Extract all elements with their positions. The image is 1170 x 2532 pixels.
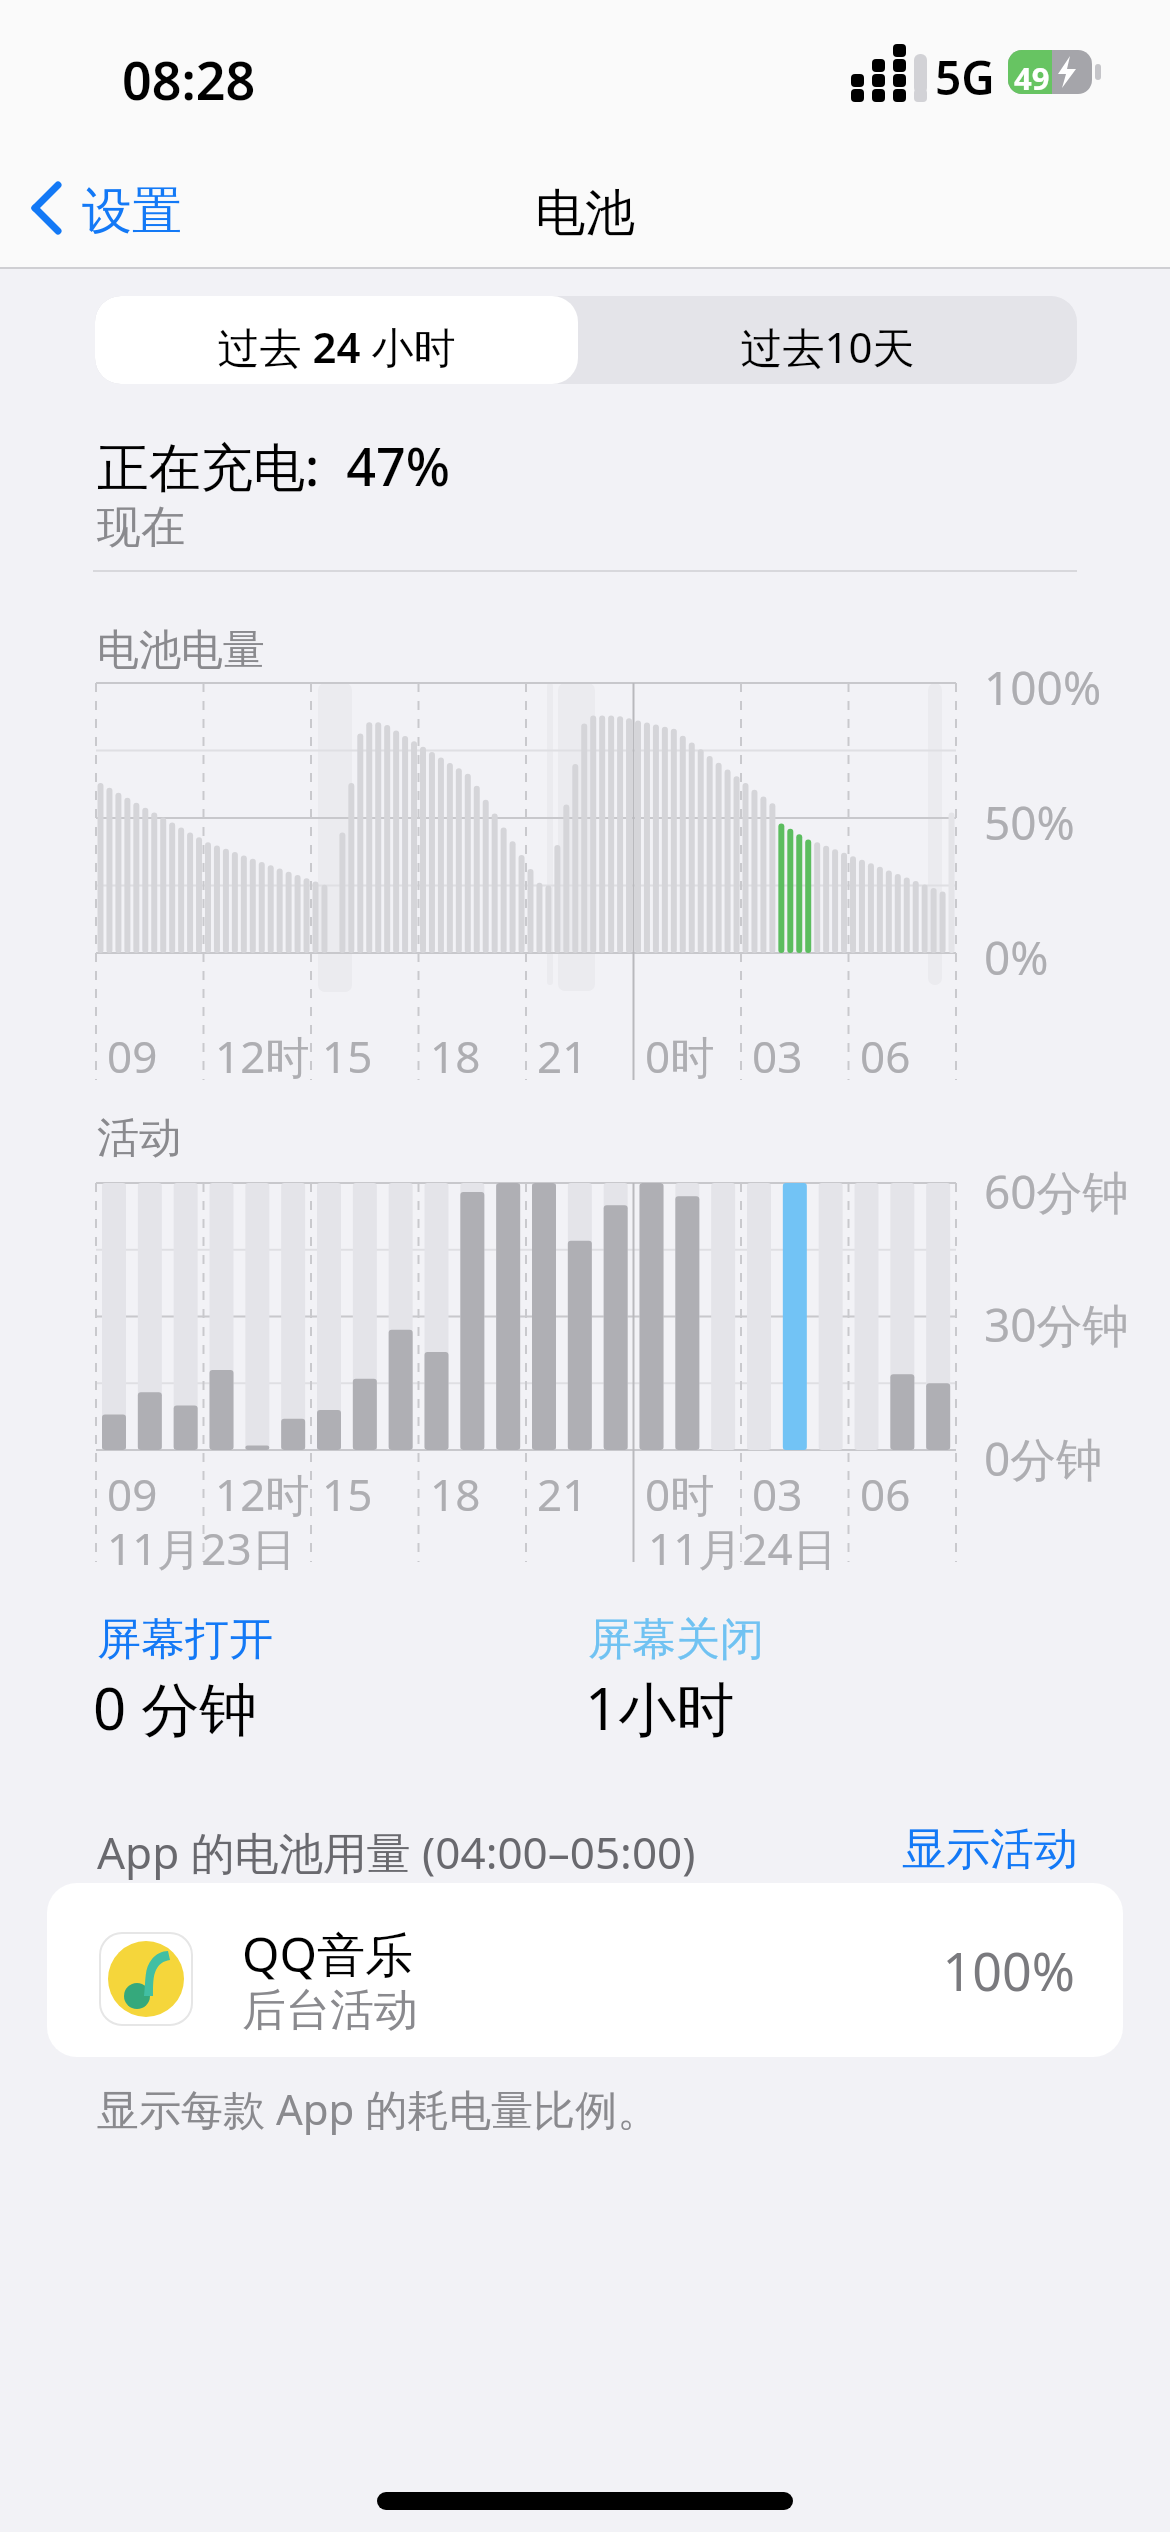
staticText: 设置 [82, 180, 182, 243]
staticText: 显示活动 [800, 1822, 1078, 1877]
staticText: 0 分钟 [93, 1668, 258, 1747]
staticText: 06 [860, 1464, 911, 1524]
staticText: 现在 [97, 500, 185, 555]
staticText: 0分钟 [984, 1427, 1103, 1490]
staticText: 21 [537, 1026, 588, 1086]
staticText: 100% [984, 656, 1102, 719]
staticText: 1小时 [585, 1668, 735, 1747]
button[interactable] [95, 296, 578, 384]
staticText: QQ音乐 [242, 1921, 413, 1987]
button[interactable]: 显示活动 [800, 1816, 1080, 1872]
staticText: 49 [1014, 57, 1050, 99]
staticText: 21 [537, 1464, 588, 1524]
staticText: 过去 24 小时 [95, 318, 578, 375]
staticText: 06 [860, 1026, 911, 1086]
staticText: 电池 [0, 182, 1170, 245]
staticText: 0% [984, 926, 1049, 989]
staticText: 09 [107, 1464, 158, 1524]
button[interactable]: QQ音乐 [47, 1883, 1123, 2057]
staticText: 12时 [215, 1464, 310, 1524]
staticText: 活动 [97, 1112, 181, 1165]
staticText: 09 [107, 1026, 158, 1086]
staticText: 11月24日 [648, 1518, 837, 1578]
button[interactable] [578, 296, 1077, 384]
staticText: 电池电量 [97, 624, 265, 677]
staticText: 屏幕关闭 [588, 1612, 764, 1667]
button[interactable]: 设置 [20, 176, 200, 252]
staticText: 03 [752, 1464, 803, 1524]
staticText: 正在充电: 47% [97, 430, 450, 501]
staticText: 15 [322, 1464, 373, 1524]
staticText: 0时 [645, 1026, 715, 1086]
staticText: 60分钟 [984, 1160, 1129, 1223]
staticText: 5G [935, 46, 995, 109]
staticText: 0时 [645, 1464, 715, 1524]
staticText: 屏幕打开 [97, 1612, 273, 1667]
staticText: 后台活动 [242, 1983, 418, 2038]
staticText: App 的电池用量 (04:00–05:00) [97, 1822, 696, 1882]
staticText: 18 [430, 1026, 481, 1086]
staticText: 30分钟 [984, 1293, 1129, 1356]
staticText: 100% [847, 1935, 1075, 2006]
staticText: 12时 [215, 1026, 310, 1086]
staticText: 15 [322, 1026, 373, 1086]
staticText: 50% [984, 791, 1075, 854]
staticText: 08:28 [122, 44, 256, 115]
staticText: 03 [752, 1026, 803, 1086]
staticText: 显示每款 App 的耗电量比例。 [97, 2080, 660, 2137]
staticText: 过去10天 [578, 318, 1077, 375]
staticText: 18 [430, 1464, 481, 1524]
staticText: 11月23日 [107, 1518, 296, 1578]
